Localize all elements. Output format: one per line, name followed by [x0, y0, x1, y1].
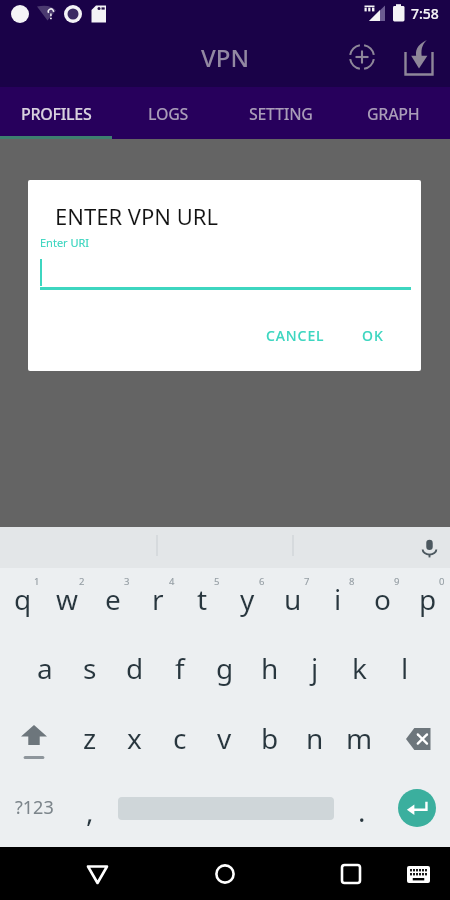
- staticText: f: [175, 649, 185, 687]
- staticText: 7: [304, 575, 310, 588]
- staticText: t: [197, 580, 208, 618]
- staticText: VPN: [201, 41, 250, 74]
- staticText: g: [216, 649, 234, 687]
- staticText: Enter URI: [40, 235, 90, 250]
- staticText: l: [401, 649, 409, 687]
- button[interactable]: Enter: [383, 773, 450, 843]
- staticText: x: [127, 719, 142, 757]
- button[interactable]: z: [67, 707, 112, 777]
- button[interactable]: ?123: [0, 773, 69, 843]
- staticText: 2: [79, 575, 85, 588]
- staticText: 4: [169, 575, 175, 588]
- button[interactable]: d: [112, 637, 157, 707]
- button[interactable]: PROFILES: [0, 87, 112, 136]
- staticText: k: [352, 649, 367, 687]
- button[interactable]: n: [292, 707, 337, 777]
- button[interactable]: f: [157, 637, 202, 707]
- staticText: q: [14, 580, 32, 618]
- button[interactable]: v: [202, 707, 247, 777]
- staticText: 9: [394, 575, 400, 588]
- staticText: 5: [214, 575, 220, 588]
- staticText: z: [83, 719, 97, 757]
- staticText: 1: [34, 575, 40, 588]
- button[interactable]: CANCEL: [251, 316, 339, 354]
- staticText: 3: [124, 575, 130, 588]
- button[interactable]: l: [382, 637, 427, 707]
- staticText: 8: [349, 575, 355, 588]
- button[interactable]: .: [341, 773, 383, 843]
- staticText: u: [284, 580, 302, 618]
- staticText: e: [105, 580, 121, 618]
- button[interactable]: Voice input: [413, 532, 445, 564]
- button[interactable]: Import profile: [395, 33, 443, 81]
- staticText: CANCEL: [266, 326, 325, 345]
- button[interactable]: s: [67, 637, 112, 707]
- staticText: OK: [362, 326, 384, 345]
- staticText: m: [346, 719, 373, 757]
- button[interactable]: r: [135, 568, 180, 637]
- button[interactable]: Space: [111, 773, 341, 843]
- staticText: .: [358, 792, 366, 830]
- staticText: w: [56, 580, 79, 618]
- staticText: p: [419, 580, 437, 618]
- staticText: ENTER VPN URL: [55, 201, 219, 231]
- button[interactable]: o: [360, 568, 405, 637]
- button[interactable]: ,: [69, 773, 111, 843]
- button[interactable]: GRAPH: [337, 87, 450, 136]
- staticText: j: [311, 649, 319, 687]
- button[interactable]: Add profile: [338, 33, 386, 81]
- staticText: LOGS: [148, 103, 189, 125]
- button[interactable]: k: [337, 637, 382, 707]
- button[interactable]: t: [180, 568, 225, 637]
- button[interactable]: Back: [73, 850, 121, 898]
- button[interactable]: g: [202, 637, 247, 707]
- button[interactable]: p: [405, 568, 450, 637]
- staticText: r: [152, 580, 164, 618]
- staticText: a: [37, 649, 53, 687]
- button[interactable]: a: [23, 637, 67, 707]
- button[interactable]: x: [112, 707, 157, 777]
- staticText: SETTING: [249, 103, 313, 125]
- button[interactable]: c: [157, 707, 202, 777]
- staticText: o: [374, 580, 391, 618]
- staticText: d: [126, 649, 144, 687]
- button[interactable]: h: [247, 637, 292, 707]
- button[interactable]: Home: [201, 850, 249, 898]
- staticText: b: [261, 719, 279, 757]
- staticText: 6: [259, 575, 265, 588]
- button[interactable]: OK: [350, 316, 396, 354]
- button[interactable]: LOGS: [112, 87, 224, 136]
- staticText: v: [217, 719, 232, 757]
- staticText: y: [240, 580, 255, 618]
- staticText: ,: [86, 792, 94, 830]
- button[interactable]: e: [90, 568, 135, 637]
- staticText: i: [334, 580, 342, 618]
- staticText: s: [83, 649, 97, 687]
- button[interactable]: y: [225, 568, 270, 637]
- button[interactable]: i: [315, 568, 360, 637]
- button[interactable]: q: [0, 568, 45, 637]
- staticText: 0: [439, 575, 445, 588]
- staticText: PROFILES: [21, 103, 92, 125]
- button[interactable]: m: [337, 707, 382, 777]
- staticText: GRAPH: [367, 103, 420, 125]
- button[interactable]: Backspace: [382, 707, 450, 777]
- button[interactable]: Recent apps: [327, 850, 375, 898]
- button[interactable]: Shift: [0, 707, 67, 777]
- button[interactable]: u: [270, 568, 315, 637]
- button[interactable]: b: [247, 707, 292, 777]
- staticText: ?123: [15, 795, 54, 820]
- button[interactable]: w: [45, 568, 90, 637]
- staticText: c: [173, 719, 187, 757]
- staticText: n: [306, 719, 324, 757]
- staticText: 7:58: [411, 4, 439, 23]
- staticText: h: [261, 649, 279, 687]
- button[interactable]: SETTING: [224, 87, 337, 136]
- button[interactable]: j: [292, 637, 337, 707]
- button[interactable]: Switch keyboard: [398, 854, 438, 894]
